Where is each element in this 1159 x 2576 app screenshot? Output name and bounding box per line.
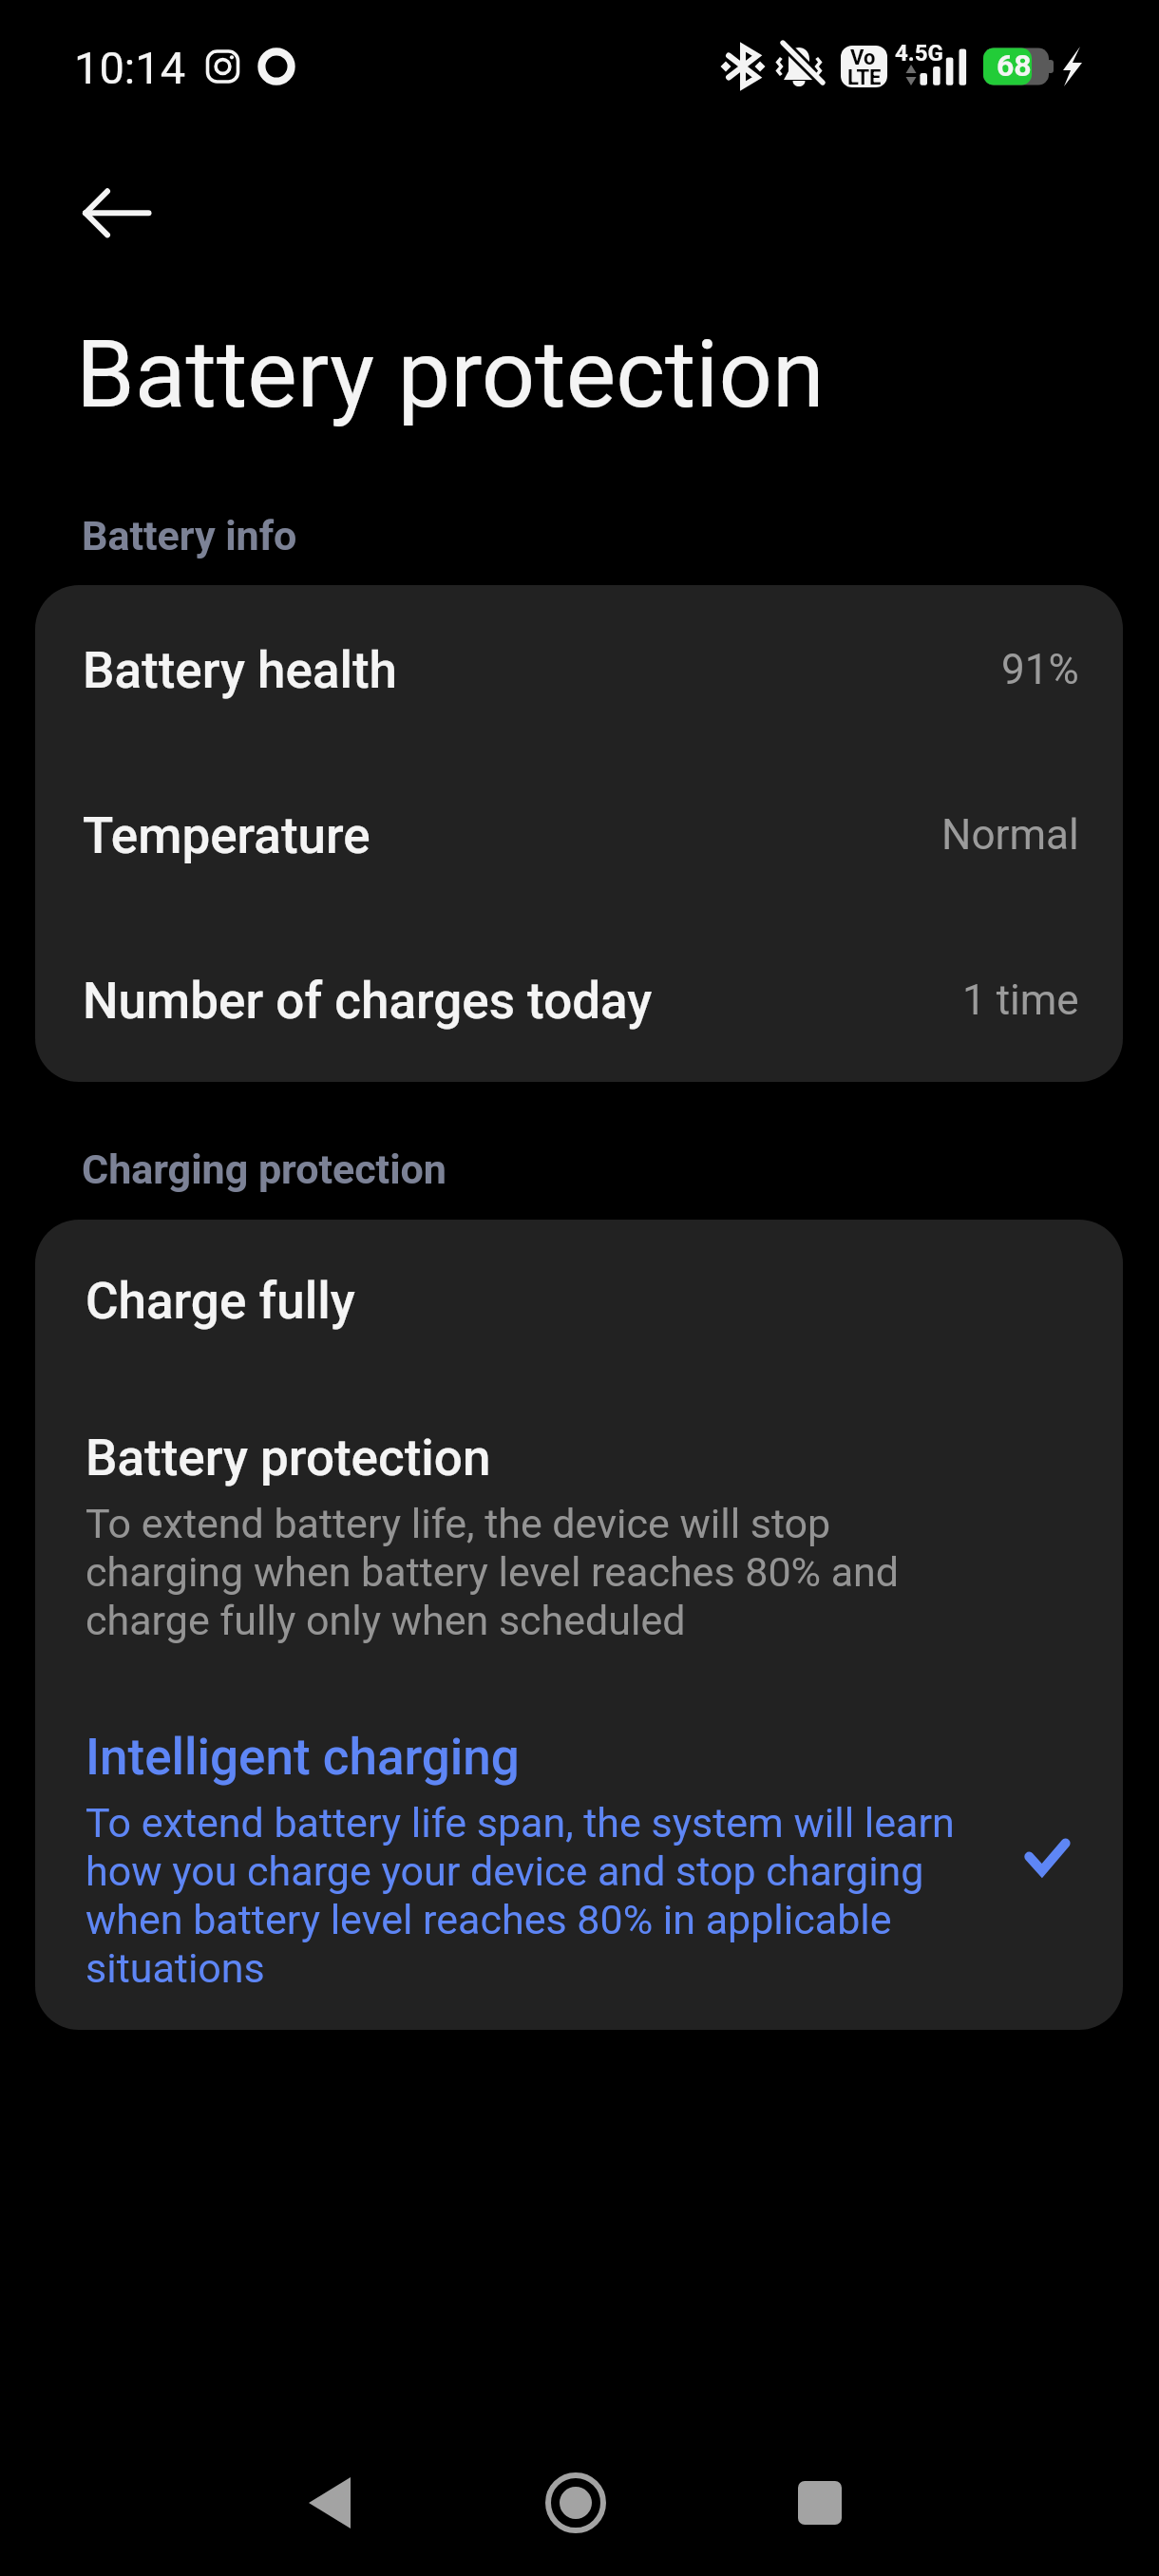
- staticText: 10:14: [74, 42, 186, 94]
- staticText: To extend battery life, the device will …: [85, 1500, 997, 1645]
- staticText: Intelligent charging: [85, 1728, 520, 1787]
- staticText: To extend battery life span, the system …: [85, 1799, 997, 1993]
- staticText: 4.5G: [895, 40, 943, 66]
- button[interactable]: Charge fully: [35, 1220, 1123, 1372]
- staticText: Charge fully: [85, 1272, 355, 1331]
- staticText: Battery health: [83, 641, 398, 700]
- button[interactable]: Battery protection: [35, 1391, 1123, 1790]
- staticText: Vo: [850, 46, 876, 70]
- staticText: 91%: [1001, 645, 1079, 694]
- staticText: Battery info: [82, 512, 297, 559]
- button[interactable]: Number of charges today: [35, 916, 1123, 1081]
- button[interactable]: Temperature: [35, 750, 1123, 916]
- button[interactable]: Back: [277, 2451, 382, 2555]
- button[interactable]: Back: [60, 156, 174, 270]
- staticText: 1 time: [962, 975, 1079, 1025]
- staticText: Number of charges today: [83, 972, 653, 1031]
- staticText: Battery protection: [85, 1429, 491, 1487]
- button[interactable]: Home: [523, 2451, 628, 2555]
- staticText: Normal: [941, 810, 1079, 860]
- staticText: 68: [997, 47, 1032, 84]
- staticText: Battery protection: [76, 319, 825, 429]
- staticText: Temperature: [83, 806, 370, 865]
- staticText: Charging protection: [82, 1146, 446, 1193]
- button[interactable]: Battery health: [35, 585, 1123, 750]
- staticText: LTE: [847, 66, 882, 90]
- button[interactable]: Recents: [768, 2451, 872, 2555]
- button[interactable]: Intelligent charging: [35, 1690, 1123, 2030]
